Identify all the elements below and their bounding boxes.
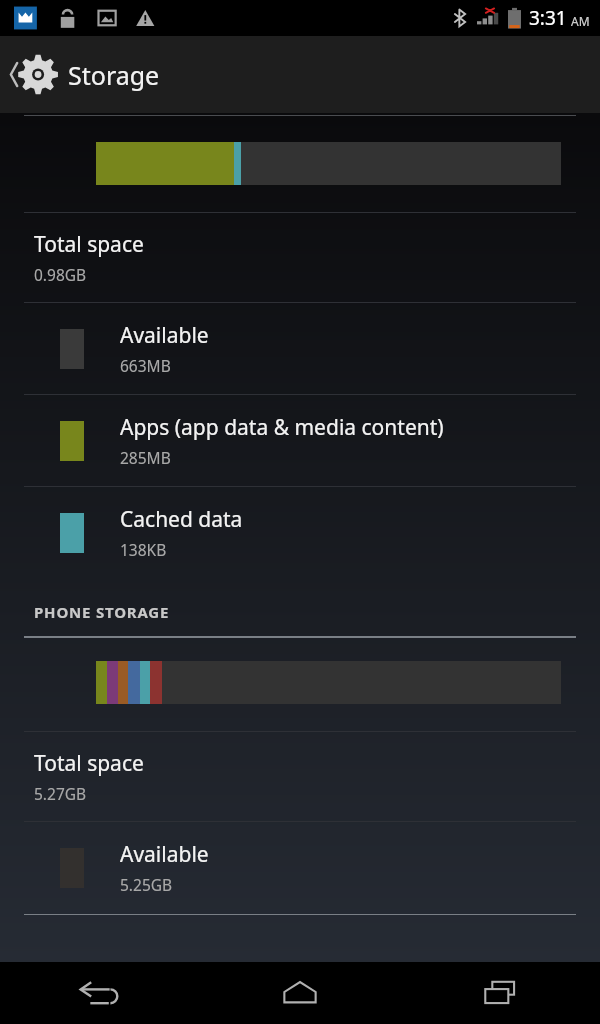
staticText: 5.27GB	[34, 783, 87, 804]
staticText: Total space	[34, 749, 144, 778]
staticText: 0.98GB	[34, 264, 87, 285]
staticText: Available	[120, 321, 209, 350]
button[interactable]: Navigate up	[0, 36, 600, 113]
staticText: AM	[571, 13, 590, 29]
staticText: 5.25GB	[120, 874, 173, 895]
staticText: Available	[120, 840, 209, 869]
button[interactable]: Recent apps	[400, 962, 600, 1024]
staticText: Total space	[34, 230, 144, 259]
button[interactable]: Total space	[0, 213, 600, 302]
staticText: PHONE STORAGE	[34, 602, 170, 622]
staticText: Storage	[68, 58, 160, 92]
button[interactable]: Total space	[0, 732, 600, 821]
staticText: 138KB	[120, 539, 167, 560]
staticText: 285MB	[120, 447, 171, 468]
staticText: 663MB	[120, 355, 171, 376]
staticText: Cached data	[120, 505, 243, 534]
button[interactable]: Cached data	[0, 487, 600, 578]
button[interactable]: Available	[0, 303, 600, 394]
staticText: Apps (app data & media content)	[120, 413, 444, 442]
button[interactable]: Back	[0, 962, 200, 1024]
button[interactable]: Apps (app data & media content)	[0, 395, 600, 486]
button[interactable]: Available	[0, 822, 600, 913]
other: Navigate up	[0, 36, 68, 113]
button[interactable]: Home	[200, 962, 400, 1024]
staticText: 3:31	[529, 5, 567, 31]
